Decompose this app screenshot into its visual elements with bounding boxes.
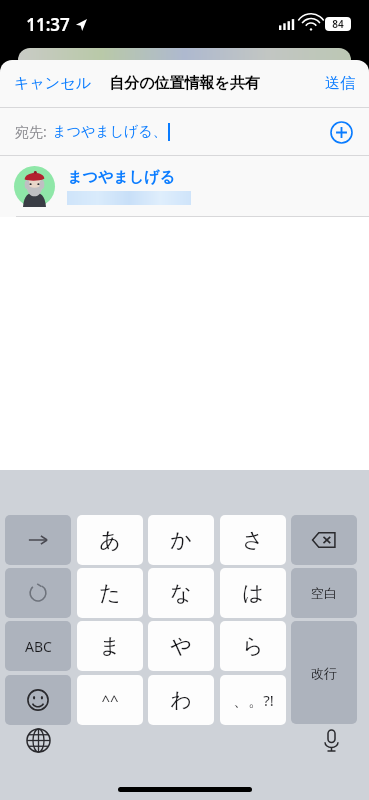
staticText: 改行 (311, 665, 337, 681)
button[interactable]: ABC (5, 621, 71, 671)
button[interactable]: や (148, 621, 214, 671)
button[interactable]: キーボードを切り替え (20, 722, 56, 758)
staticText: 84 (332, 17, 344, 31)
staticText: ABC (25, 637, 52, 656)
button[interactable]: まつやましげる (0, 156, 369, 216)
button[interactable]: あ (77, 515, 143, 565)
button[interactable]: ^^ (77, 675, 143, 725)
staticText: 自分の位置情報を共有 (109, 74, 260, 93)
button[interactable]: ら (220, 621, 286, 671)
button[interactable]: わ (148, 675, 214, 725)
button[interactable]: 、。?! (220, 675, 286, 725)
button[interactable]: 連絡先を追加 (325, 116, 357, 148)
staticText: か (170, 527, 192, 553)
button[interactable]: た (77, 568, 143, 618)
staticText: 宛先: (15, 122, 47, 141)
button[interactable]: 音声入力 (313, 722, 349, 758)
staticText: まつやましげる、 (52, 123, 167, 141)
staticText: ま (99, 633, 121, 659)
button[interactable]: は (220, 568, 286, 618)
button[interactable]: 空白 (291, 568, 357, 618)
button[interactable]: キャンセル (0, 66, 99, 101)
staticText: 11:37 (26, 13, 70, 36)
button[interactable]: 改行 (291, 621, 357, 724)
button[interactable]: さ (220, 515, 286, 565)
staticText: 空白 (311, 585, 337, 601)
button[interactable]: な (148, 568, 214, 618)
staticText: キャンセル (14, 74, 91, 93)
button[interactable]: か (148, 515, 214, 565)
staticText: 送信 (325, 74, 355, 93)
staticText: わ (170, 687, 192, 713)
staticText: さ (242, 527, 264, 553)
staticText: ら (242, 633, 264, 659)
staticText: な (170, 580, 192, 606)
button[interactable]: 送信 (315, 66, 369, 101)
button[interactable]: 削除 (291, 515, 357, 565)
staticText: ^^ (101, 690, 119, 710)
button[interactable]: 次候補 (5, 515, 71, 565)
staticText: は (242, 580, 264, 606)
button[interactable]: 取り消し (5, 568, 71, 618)
staticText: や (170, 633, 192, 659)
button[interactable]: 絵文字 (5, 675, 71, 725)
button[interactable]: ま (77, 621, 143, 671)
staticText: あ (99, 527, 121, 553)
staticText: た (99, 580, 121, 606)
staticText: まつやましげる (67, 168, 175, 187)
staticText: 、。?! (233, 690, 274, 710)
